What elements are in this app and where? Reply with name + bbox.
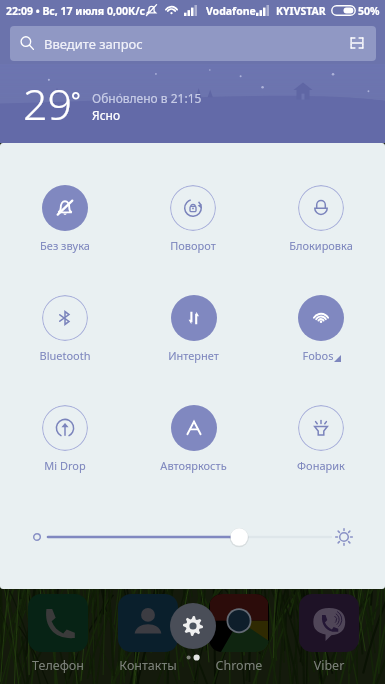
staticText: Блокировка	[289, 238, 353, 253]
staticText: Обновлено в 21:15	[92, 90, 202, 106]
staticText: Введите запрос	[44, 35, 143, 53]
staticText: Фонарик	[297, 458, 345, 473]
staticText: Без звука	[40, 238, 90, 253]
staticText: Поворот	[170, 238, 216, 253]
button[interactable]	[0, 519, 385, 555]
staticText: Fobos	[302, 348, 334, 363]
button[interactable]: Интернет	[168, 295, 219, 363]
button[interactable]: Телефон	[28, 594, 88, 674]
button[interactable]: Chrome	[209, 594, 269, 674]
button[interactable]: Bluetooth	[39, 295, 91, 363]
staticText: Chrome	[209, 657, 269, 674]
staticText: Телефон	[28, 657, 88, 674]
staticText: 50%	[358, 4, 380, 18]
other: Scan code	[350, 36, 364, 50]
staticText: Viber	[299, 657, 359, 674]
other: Search	[19, 35, 35, 51]
button[interactable]: Без звука	[40, 185, 90, 253]
staticText: Контакты	[118, 657, 178, 674]
staticText: Интернет	[168, 348, 219, 363]
button[interactable]: Fobos	[298, 295, 344, 363]
button[interactable]: Settings	[170, 603, 216, 649]
staticText: Mi Drop	[44, 458, 86, 473]
button[interactable]: Контакты	[118, 594, 178, 674]
staticText: Автояркость	[160, 458, 227, 473]
staticText: Ясно	[92, 107, 121, 123]
staticText: 22:09 • Вс, 17 июля 0,00К/с	[6, 4, 146, 18]
button[interactable]: Фонарик	[297, 405, 345, 473]
button[interactable]: 29	[0, 64, 385, 143]
staticText: Bluetooth	[39, 348, 91, 363]
button[interactable]: Mi Drop	[42, 405, 88, 473]
button[interactable]: Viber	[299, 594, 359, 674]
staticText: 29	[23, 74, 73, 133]
button[interactable]: Блокировка	[289, 185, 353, 253]
staticText: KYIVSTAR	[276, 4, 326, 18]
button[interactable]: Search	[10, 26, 376, 61]
button[interactable]: Автояркость	[160, 405, 227, 473]
button[interactable]: Поворот	[170, 185, 216, 253]
staticText: Vodafone	[206, 4, 256, 18]
